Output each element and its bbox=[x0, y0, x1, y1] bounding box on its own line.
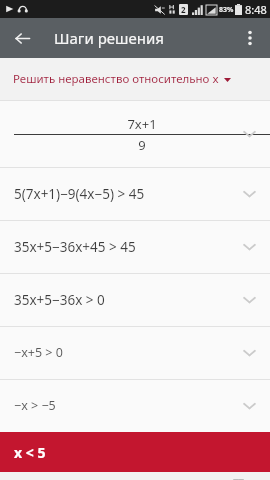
staticText: 7x+1 bbox=[127, 115, 157, 133]
other: Expand bbox=[243, 296, 256, 304]
button[interactable]: 35x+5−36x > 0 bbox=[0, 273, 270, 326]
button[interactable]: −x+5 > 0 bbox=[0, 326, 270, 379]
button[interactable]: 5(7x+1)−9(4x−5) > 45 bbox=[0, 167, 270, 220]
button[interactable]: x < 5 bbox=[0, 432, 270, 472]
staticText: 35x+5−36x+45 > 45 bbox=[14, 238, 136, 256]
button[interactable]: Решить неравенство относительно x bbox=[0, 58, 270, 100]
staticText: −x > −5 bbox=[14, 397, 56, 414]
staticText: 2 bbox=[181, 4, 186, 15]
staticText: 83% bbox=[219, 5, 234, 15]
button[interactable]: 35x+5−36x+45 > 45 bbox=[0, 220, 270, 273]
other: Expand bbox=[243, 130, 256, 138]
staticText: x < 5 bbox=[14, 443, 46, 462]
other: Expand bbox=[243, 349, 256, 357]
staticText: −x+5 > 0 bbox=[14, 344, 63, 361]
staticText: 35x+5−36x > 0 bbox=[14, 291, 105, 309]
staticText: 5(7x+1)−9(4x−5) > 45 bbox=[14, 185, 145, 203]
button[interactable]: 7x+1 bbox=[0, 100, 270, 167]
button[interactable]: More options bbox=[234, 22, 266, 54]
staticText: 8:48 bbox=[245, 2, 267, 17]
staticText: Шаги решения bbox=[54, 28, 164, 48]
other: Expand bbox=[243, 243, 256, 251]
staticText: Решить неравенство относительно x bbox=[13, 71, 219, 87]
other: Expand bbox=[243, 402, 256, 410]
other: Expand bbox=[243, 190, 256, 198]
button[interactable]: Back bbox=[6, 22, 38, 54]
button[interactable]: −x > −5 bbox=[0, 379, 270, 432]
staticText: 9 bbox=[138, 136, 146, 154]
